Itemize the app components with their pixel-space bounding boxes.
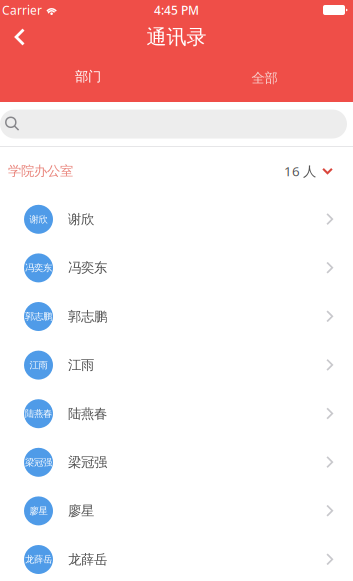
staticText: 龙薛岳 — [25, 554, 52, 565]
button[interactable]: Back — [0, 20, 40, 54]
button[interactable]: 冯奕东 — [0, 244, 353, 292]
staticText: 梁冠强 — [68, 454, 107, 470]
staticText: 廖星 — [29, 505, 47, 517]
staticText: 郭志鹏 — [25, 311, 52, 322]
staticText: 廖星 — [68, 503, 94, 519]
staticText: 陆燕春 — [68, 405, 107, 422]
button[interactable]: 谢欣 — [0, 195, 353, 244]
staticText: 谢欣 — [68, 211, 94, 227]
button[interactable]: 江雨 — [0, 341, 353, 389]
button[interactable]: Search — [0, 109, 347, 138]
staticText: 江雨 — [68, 357, 94, 373]
button[interactable]: 全部 — [176, 54, 353, 102]
button[interactable]: 部门 — [0, 54, 176, 102]
staticText: 梁冠强 — [25, 457, 52, 468]
staticText: 郭志鹏 — [68, 308, 107, 325]
button[interactable]: 龙薛岳 — [0, 535, 353, 581]
button[interactable]: 郭志鹏 — [0, 292, 353, 341]
staticText: 江雨 — [29, 359, 47, 371]
staticText: 龙薛岳 — [68, 551, 107, 568]
staticText: 16 人 — [284, 162, 316, 180]
staticText: 部门 — [75, 68, 101, 85]
staticText: 谢欣 — [29, 214, 47, 225]
staticText: 冯奕东 — [68, 260, 107, 276]
staticText: 通讯录 — [146, 25, 206, 49]
staticText: 全部 — [251, 70, 277, 86]
button[interactable]: 学院办公室 — [0, 147, 353, 195]
staticText: 4:45 PM — [154, 2, 199, 18]
staticText: Carrier — [2, 2, 42, 18]
staticText: 冯奕东 — [25, 262, 52, 274]
staticText: 学院办公室 — [8, 163, 73, 179]
button[interactable]: 梁冠强 — [0, 438, 353, 487]
button[interactable]: 陆燕春 — [0, 389, 353, 438]
staticText: 陆燕春 — [25, 408, 52, 419]
button[interactable]: 廖星 — [0, 487, 353, 535]
